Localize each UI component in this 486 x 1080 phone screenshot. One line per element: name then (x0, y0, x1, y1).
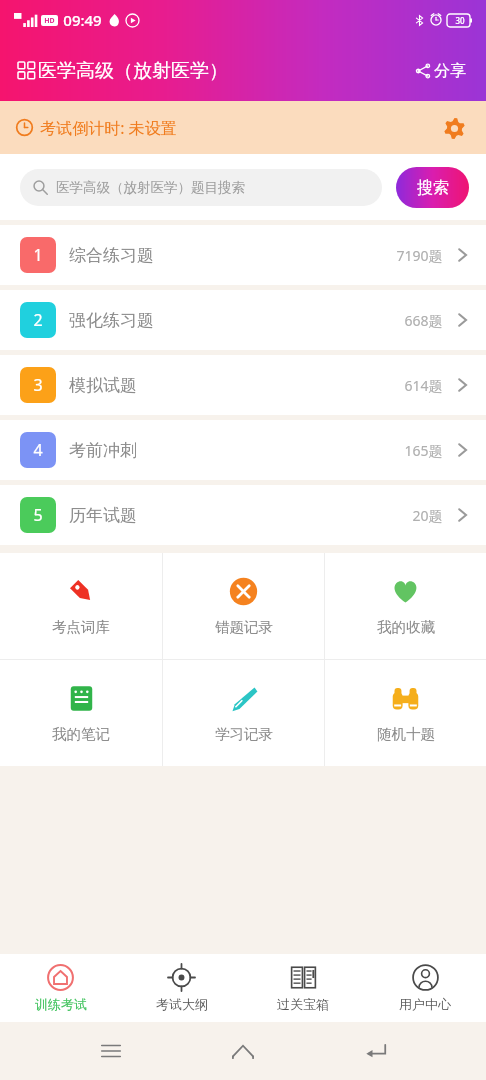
button[interactable]: 5 (0, 485, 486, 545)
staticText: 30 (455, 15, 465, 26)
staticText: 历年试题 (69, 505, 137, 526)
staticText: 5 (33, 504, 43, 526)
staticText: 4 (33, 439, 43, 461)
staticText: 医学高级（放射医学） (38, 59, 228, 83)
button[interactable]: 用户中心 (364, 954, 486, 1022)
staticText: 614题 (404, 376, 443, 395)
staticText: 我的笔记 (52, 725, 110, 743)
staticText: 错题记录 (215, 618, 273, 636)
staticText: HD (44, 16, 55, 26)
staticText: 过关宝箱 (277, 996, 329, 1012)
staticText: 训练考试 (35, 996, 87, 1012)
staticText: 考试倒计时: 未设置 (40, 117, 177, 139)
staticText: 1 (33, 244, 43, 266)
button[interactable]: 设置 (439, 113, 469, 143)
staticText: 考点词库 (52, 618, 110, 636)
button[interactable]: 考试倒计时: 未设置 (0, 101, 486, 154)
staticText: 考前冲刺 (69, 440, 137, 461)
button[interactable]: 1 (0, 225, 486, 285)
button[interactable]: 过关宝箱 (242, 954, 364, 1022)
staticText: 随机十题 (377, 725, 435, 743)
staticText: 2 (33, 309, 43, 331)
staticText: 用户中心 (399, 996, 451, 1012)
button[interactable]: Back (354, 1029, 398, 1073)
staticText: 综合练习题 (69, 245, 154, 266)
button[interactable]: 学习记录 (163, 660, 324, 766)
button[interactable]: 考试大纲 (121, 954, 242, 1022)
button[interactable]: 我的笔记 (0, 660, 162, 766)
button[interactable]: 随机十题 (325, 660, 486, 766)
button[interactable]: 2 (0, 290, 486, 350)
button[interactable]: 医学高级（放射医学）题目搜索 (20, 169, 382, 206)
staticText: 165题 (404, 441, 443, 460)
staticText: 模拟试题 (69, 375, 137, 396)
button[interactable]: 4 (0, 420, 486, 480)
button[interactable]: 训练考试 (0, 954, 121, 1022)
button[interactable]: 3 (0, 355, 486, 415)
button[interactable]: 分享 (411, 55, 470, 87)
staticText: 强化练习题 (69, 310, 154, 331)
staticText: 09:49 (63, 10, 102, 30)
staticText: 7190题 (396, 246, 443, 265)
staticText: 医学高级（放射医学）题目搜索 (56, 179, 245, 196)
button[interactable]: 我的收藏 (325, 553, 486, 659)
staticText: 考试大纲 (156, 996, 208, 1012)
button[interactable]: Home (221, 1029, 265, 1073)
button[interactable]: 搜索 (396, 167, 469, 208)
button[interactable]: 考点词库 (0, 553, 162, 659)
staticText: 我的收藏 (377, 618, 435, 636)
staticText: 668题 (404, 311, 443, 330)
staticText: 搜索 (417, 178, 449, 198)
staticText: 20题 (412, 506, 443, 525)
button[interactable]: Recents (89, 1029, 133, 1073)
staticText: 3 (33, 374, 43, 396)
button[interactable]: 错题记录 (163, 553, 324, 659)
staticText: 分享 (434, 61, 466, 81)
staticText: 学习记录 (215, 725, 273, 743)
